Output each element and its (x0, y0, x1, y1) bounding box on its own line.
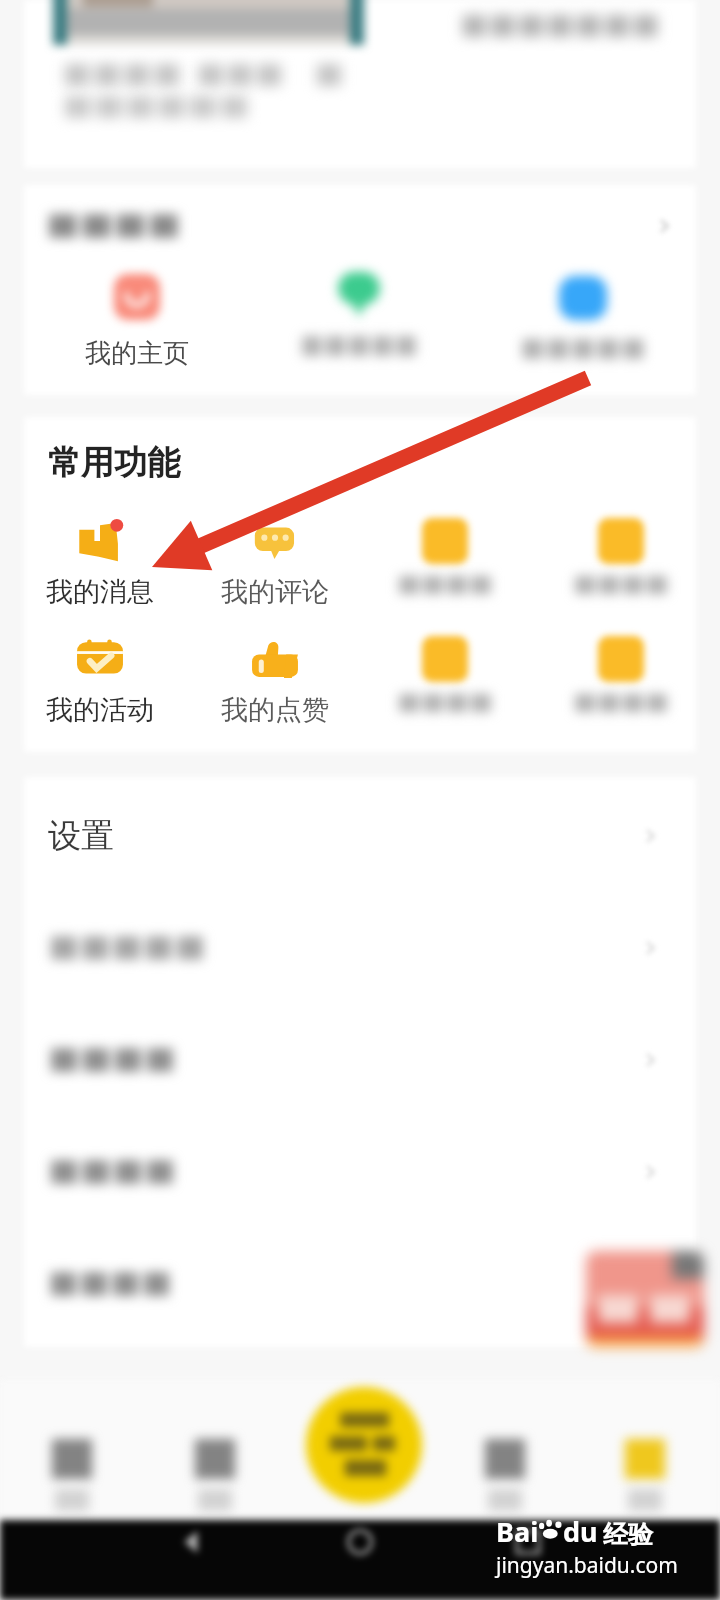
button[interactable]: Recents (506, 1520, 550, 1564)
button[interactable]: Tab 4 (585, 1380, 705, 1520)
button[interactable] (24, 1004, 696, 1116)
button[interactable]: Tab 0 (12, 1380, 132, 1520)
button[interactable] (385, 513, 505, 595)
button[interactable] (561, 631, 681, 713)
staticText: 常用功能 (48, 442, 180, 484)
button[interactable]: 我的消息 (40, 513, 160, 609)
staticText: Bai (496, 1513, 539, 1550)
button[interactable]: Tab 3 (445, 1380, 565, 1520)
button[interactable]: 设置 (24, 780, 696, 892)
button[interactable] (561, 513, 681, 595)
button[interactable]: 我的评论 (215, 513, 335, 609)
button[interactable]: 我的活动 (40, 631, 160, 727)
button[interactable] (279, 269, 439, 357)
staticText: du (563, 1513, 598, 1550)
button[interactable]: Post (294, 1375, 434, 1515)
button[interactable]: 我的点赞 (215, 631, 335, 727)
button[interactable] (385, 631, 505, 713)
button[interactable]: Back (170, 1520, 214, 1564)
button[interactable] (24, 1116, 696, 1228)
staticText: 我的主页 (85, 337, 189, 370)
staticText: 我的评论 (221, 575, 329, 609)
button[interactable]: 我的主页 (57, 271, 217, 370)
button[interactable]: Tab 1 (155, 1380, 275, 1520)
staticText: 我的点赞 (221, 693, 329, 727)
staticText: jingyan.baidu.com (496, 1551, 678, 1580)
staticText: 经验 (603, 1519, 653, 1550)
staticText: 设置 (48, 815, 114, 857)
button[interactable]: Home (338, 1520, 382, 1564)
button[interactable] (24, 1228, 696, 1340)
button[interactable] (24, 892, 696, 1004)
button[interactable] (503, 272, 663, 360)
staticText: 我的活动 (46, 693, 154, 727)
staticText: 我的消息 (46, 575, 154, 609)
